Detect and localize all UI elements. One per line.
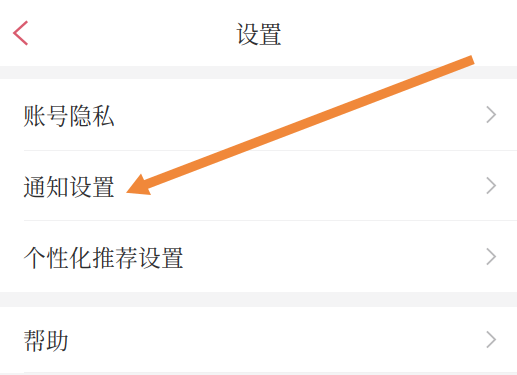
staticText: 账号隐私: [23, 98, 115, 131]
staticText: 设置: [235, 16, 281, 50]
button[interactable]: 帮助: [0, 307, 517, 372]
button[interactable]: 个性化推荐设置: [0, 221, 517, 292]
button[interactable]: 通知设置: [0, 151, 517, 220]
button[interactable]: Back: [0, 10, 42, 56]
button[interactable]: 账号隐私: [0, 79, 517, 150]
staticText: 帮助: [23, 323, 69, 356]
staticText: 通知设置: [23, 169, 115, 202]
staticText: 个性化推荐设置: [23, 240, 184, 273]
